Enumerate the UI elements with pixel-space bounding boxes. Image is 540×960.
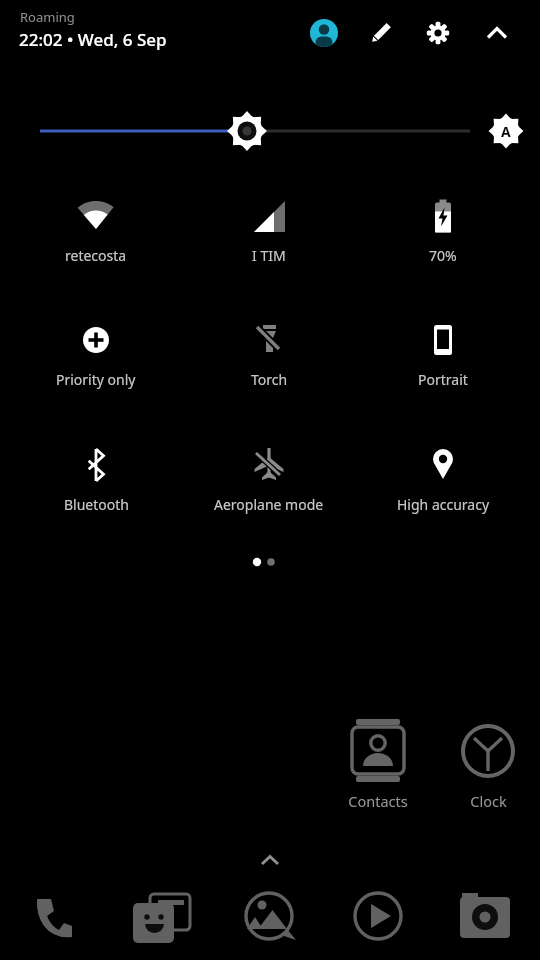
button[interactable]: High accuracy [353,443,533,514]
button[interactable]: Bluetooth [6,443,186,514]
staticText: retecosta [65,246,127,265]
staticText: High accuracy [397,495,490,514]
staticText: Contacts [348,791,408,811]
staticText: Roaming [20,8,75,26]
staticText: Portrait [418,370,468,389]
button[interactable]: Torch [179,318,359,389]
button[interactable]: A [492,117,520,145]
staticText: Aeroplane mode [214,495,324,514]
staticText: Bluetooth [64,495,129,514]
staticText: Clock [470,791,507,811]
staticText: 70% [429,246,457,265]
button[interactable]: I TIM [179,194,359,265]
staticText: 22:02 • Wed, 6 Sep [19,28,167,51]
staticText: I TIM [252,246,286,265]
button[interactable]: retecosta [6,194,186,265]
button[interactable]: 70% [353,194,533,265]
staticText: Torch [251,370,288,389]
button[interactable] [483,19,511,47]
button[interactable]: Priority only [6,318,186,389]
staticText: Priority only [56,370,136,389]
button[interactable]: Aeroplane mode [179,443,359,514]
button[interactable] [424,19,452,47]
button[interactable] [367,19,395,47]
button[interactable]: Portrait [353,318,533,389]
button[interactable] [310,19,338,47]
staticText: A [501,122,511,141]
